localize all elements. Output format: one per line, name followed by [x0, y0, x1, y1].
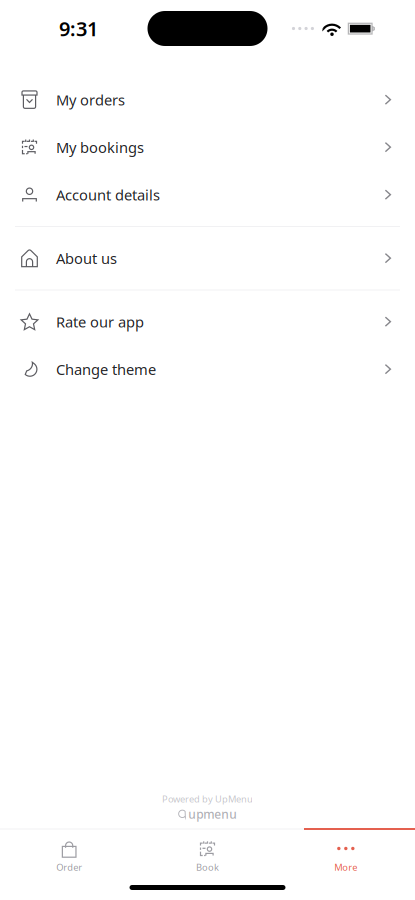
button[interactable]: Book [138, 830, 277, 885]
button[interactable]: Change theme [0, 345, 415, 393]
button[interactable]: Rate our app [0, 298, 415, 345]
button[interactable]: About us [0, 234, 415, 282]
staticText: Order [56, 861, 82, 873]
staticText: My bookings [56, 137, 144, 157]
staticText: More [334, 861, 357, 873]
staticText: Powered by UpMenu [162, 793, 253, 805]
staticText: upmenu [188, 806, 237, 822]
staticText: About us [56, 248, 117, 268]
staticText: Rate our app [56, 312, 144, 331]
staticText: 9:31 [59, 15, 98, 42]
staticText: My orders [56, 90, 125, 109]
staticText: Account details [56, 185, 160, 204]
button[interactable]: More [277, 830, 415, 885]
staticText: Book [196, 861, 219, 873]
button[interactable]: My orders [0, 76, 415, 123]
staticText: Change theme [56, 359, 156, 379]
button[interactable]: My bookings [0, 123, 415, 171]
button[interactable]: Account details [0, 171, 415, 218]
button[interactable]: Order [0, 830, 138, 885]
